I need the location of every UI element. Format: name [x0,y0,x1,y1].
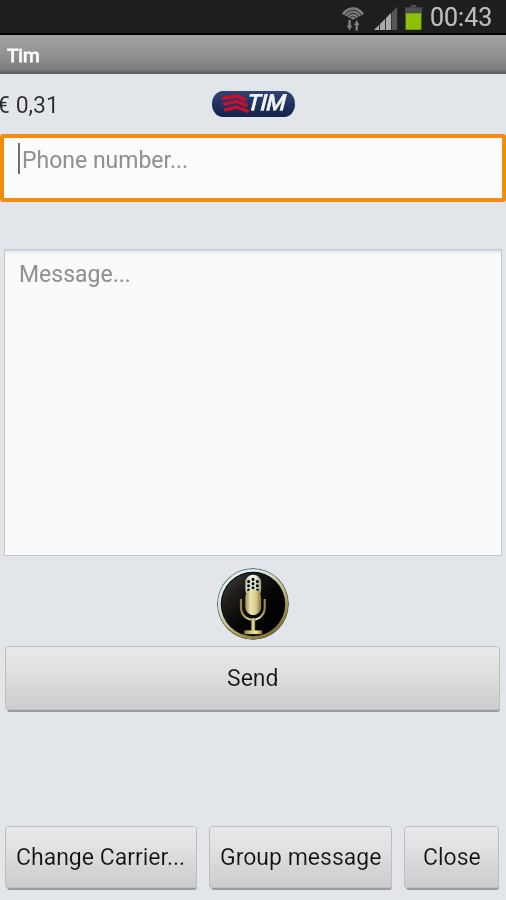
staticText: TIM [246,90,285,116]
staticText: Tim [7,44,40,66]
staticText: 00:43 [430,3,493,32]
staticText: Group message [220,844,382,871]
staticText: Change Carrier... [16,844,186,871]
button[interactable]: Close [404,826,499,888]
button[interactable]: Change Carrier... [5,826,197,888]
button[interactable]: Send [5,646,500,710]
button[interactable]: Voice input [217,568,289,640]
button[interactable]: Phone number... [4,138,502,198]
staticText: Phone number... [22,147,189,174]
button[interactable]: Group message [209,826,392,888]
staticText: € 0,31 [0,92,59,119]
staticText: Message... [19,261,131,288]
staticText: Close [423,844,481,871]
button[interactable]: Message... [5,250,501,555]
staticText: Send [227,665,279,692]
